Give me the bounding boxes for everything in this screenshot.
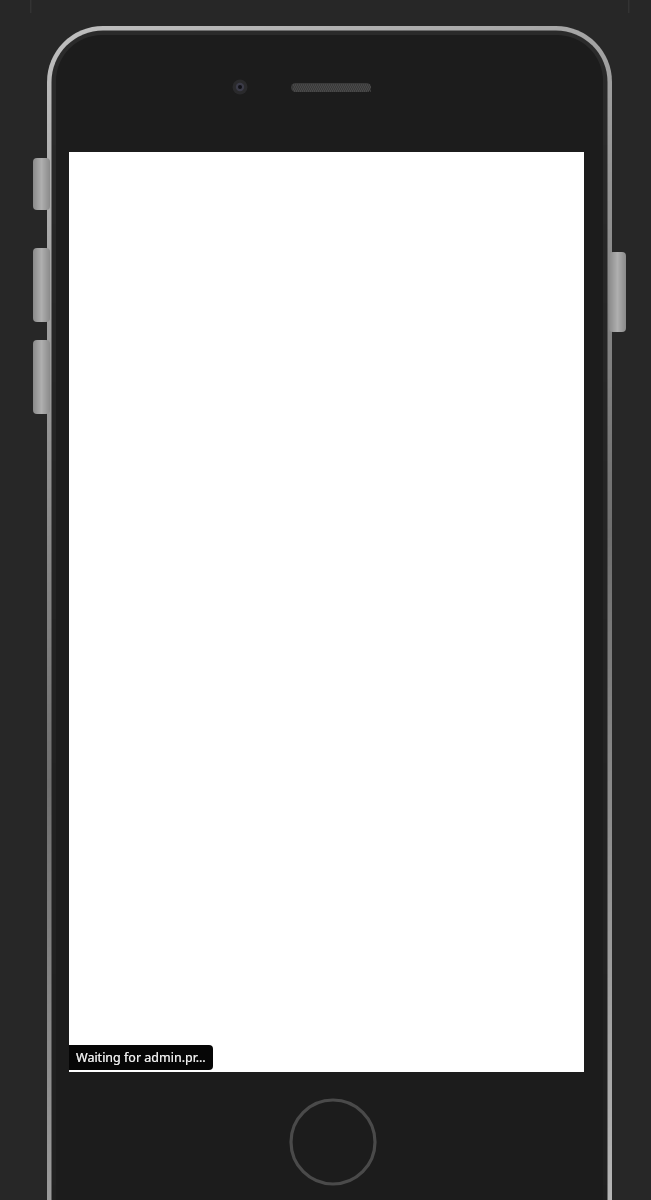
- staticText: Waiting for admin.pr…: [76, 1049, 206, 1066]
- button[interactable]: Page loading status: [69, 152, 584, 1072]
- button[interactable]: Page loading status: [76, 1045, 206, 1070]
